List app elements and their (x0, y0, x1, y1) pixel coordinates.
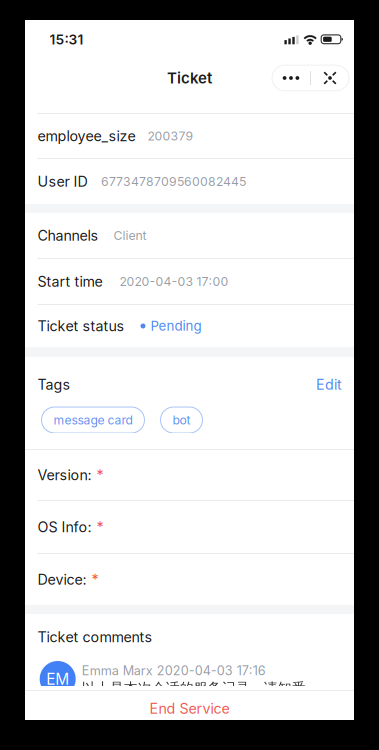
staticText: Device: (37, 571, 86, 588)
staticText: Client (113, 228, 146, 243)
button[interactable]: Close (311, 65, 349, 91)
staticText: Tags (37, 376, 70, 393)
staticText: 200379 (147, 129, 193, 143)
button[interactable]: Edit (316, 376, 342, 393)
button[interactable]: message card (41, 407, 144, 433)
staticText: User ID (37, 173, 87, 190)
button[interactable]: End Service (25, 686, 354, 720)
staticText: Ticket status (37, 317, 124, 335)
staticText: message card (53, 413, 132, 427)
staticText: 2020-04-03 17:00 (119, 274, 228, 289)
staticText: End Service (149, 700, 229, 717)
staticText: OS Info: (37, 518, 91, 536)
staticText: Edit (316, 376, 342, 393)
staticText: Pending (150, 318, 201, 334)
staticText: 以上是本次会话的服务记录，请知悉 (82, 679, 306, 697)
staticText: Version: (37, 466, 91, 484)
button[interactable]: bot (160, 407, 202, 433)
staticText: Ticket (167, 69, 212, 87)
staticText: Channels (37, 227, 98, 244)
staticText: employee_size (37, 127, 135, 145)
staticText: Emma Marx 2020-04-03 17:16 (82, 663, 266, 678)
staticText: 6773478709560082445 (101, 174, 246, 189)
staticText: 15:31 (49, 31, 83, 48)
staticText: Start time (37, 273, 102, 290)
staticText: bot (172, 413, 190, 427)
staticText: * (91, 571, 98, 588)
staticText: * (96, 518, 103, 536)
staticText: Ticket comments (37, 628, 152, 646)
button[interactable]: More (272, 65, 310, 91)
staticText: * (96, 466, 103, 484)
staticText: EM (46, 670, 69, 688)
